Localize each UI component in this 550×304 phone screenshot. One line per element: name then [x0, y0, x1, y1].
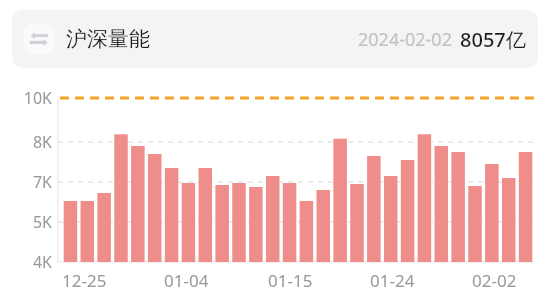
staticText: 沪深量能	[66, 26, 150, 52]
staticText: 12-25	[62, 269, 107, 292]
staticText: 5K	[32, 211, 52, 233]
staticText: 10K	[23, 87, 52, 109]
staticText: 8K	[32, 131, 52, 153]
staticText: 2024-02-02	[358, 27, 452, 52]
staticText: 8057亿	[460, 26, 526, 53]
other: Exchange volume	[24, 24, 54, 54]
button[interactable]: Exchange volume	[12, 10, 538, 68]
staticText: 7K	[32, 171, 52, 193]
staticText: 01-24	[370, 269, 415, 292]
staticText: 02-02	[472, 269, 517, 292]
staticText: 4K	[32, 251, 52, 273]
staticText: 01-04	[164, 269, 209, 292]
staticText: 01-15	[268, 269, 313, 292]
